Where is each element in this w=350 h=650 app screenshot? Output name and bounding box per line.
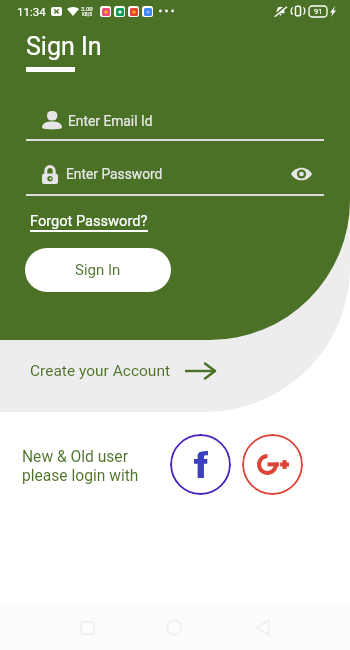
staticText: Sign In <box>75 261 121 279</box>
staticText: Enter Email Id <box>68 113 153 129</box>
staticText: Sign In <box>26 32 102 61</box>
staticText: Create your Account <box>30 362 171 380</box>
staticText: 3.00 <box>81 5 93 12</box>
button[interactable]: Sign In <box>25 248 171 292</box>
button[interactable]: Create your Account <box>30 362 216 380</box>
staticText: New & Old user <box>22 448 128 466</box>
staticText: please login with <box>22 467 139 485</box>
staticText: 11:34 <box>17 5 46 18</box>
staticText: 91 <box>314 7 323 16</box>
staticText: KB/S <box>82 12 93 17</box>
staticText: Forgot Password? <box>30 212 148 229</box>
button[interactable]: Sign in with Google <box>242 434 303 495</box>
button[interactable]: Sign in with Facebook <box>170 434 231 495</box>
button[interactable]: Forgot Password? <box>30 212 148 232</box>
button[interactable]: Show password <box>289 162 313 186</box>
staticText: Enter Password <box>66 166 163 182</box>
